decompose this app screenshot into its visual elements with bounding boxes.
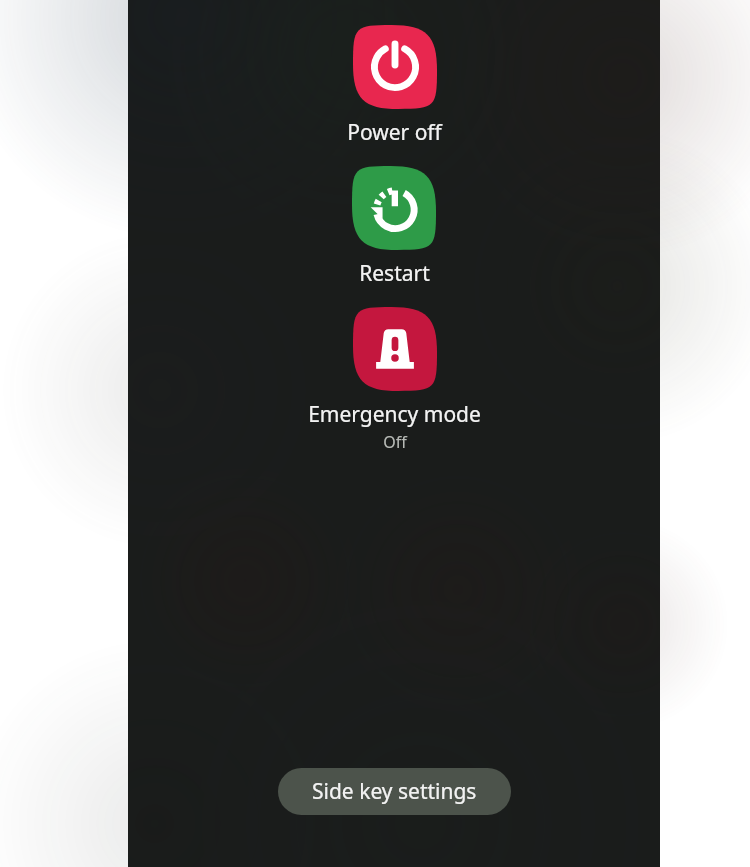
button[interactable]: Emergency mode — [298, 307, 491, 453]
button[interactable]: Restart — [342, 166, 446, 288]
button[interactable]: Side key settings — [278, 768, 511, 815]
staticText: Restart — [359, 259, 430, 288]
staticText: Emergency mode — [308, 400, 481, 429]
other: Power off — [353, 25, 437, 109]
other: Emergency mode — [353, 307, 437, 391]
staticText: Off — [383, 431, 407, 453]
staticText: Power off — [347, 118, 442, 147]
staticText: Side key settings — [312, 777, 477, 806]
other: Restart — [352, 166, 436, 250]
button[interactable]: Power off — [337, 25, 452, 147]
